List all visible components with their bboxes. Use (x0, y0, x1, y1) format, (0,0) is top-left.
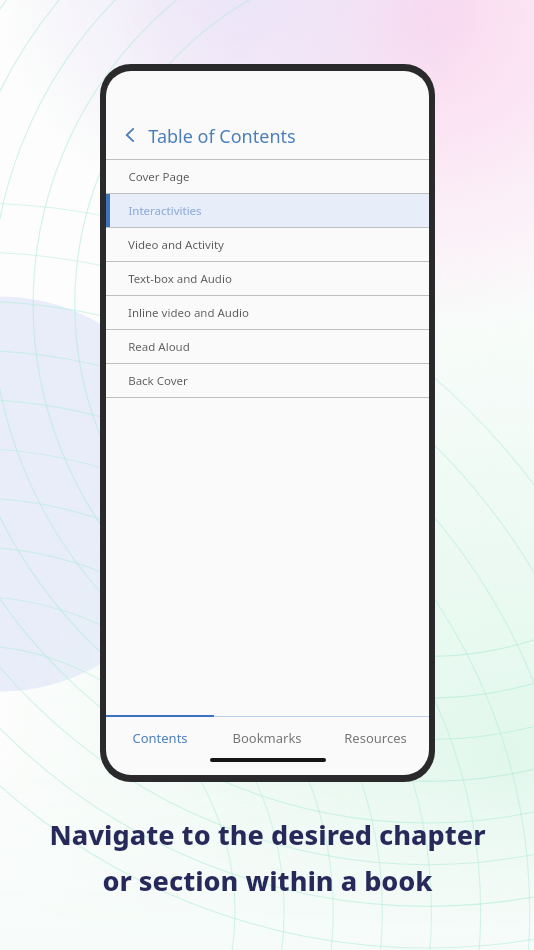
button[interactable]: Cover Page (106, 160, 429, 193)
staticText: Back Cover (128, 373, 188, 389)
button[interactable]: Video and Activity (106, 228, 429, 261)
button[interactable]: Contents (106, 719, 213, 757)
staticText: Interactivities (128, 203, 202, 219)
staticText: Bookmarks (232, 729, 302, 747)
staticText: Read Aloud (128, 339, 190, 355)
staticText: Video and Activity (128, 237, 224, 253)
staticText: Navigate to the desired chapter (49, 816, 486, 853)
button[interactable]: Interactivities (106, 194, 429, 227)
staticText: or section within a book (102, 862, 433, 899)
staticText: Cover Page (128, 169, 190, 185)
staticText: Text-box and Audio (128, 271, 232, 287)
button[interactable]: Resources (321, 719, 429, 757)
staticText: Resources (344, 729, 407, 747)
button[interactable]: Bookmarks (213, 719, 321, 757)
button[interactable]: Back Cover (106, 364, 429, 397)
button[interactable]: Read Aloud (106, 330, 429, 363)
staticText: Contents (132, 729, 188, 747)
button[interactable]: Back (117, 122, 143, 148)
button[interactable]: Back (106, 71, 429, 159)
button[interactable]: Text-box and Audio (106, 262, 429, 295)
staticText: Table of Contents (148, 124, 296, 149)
staticText: Inline video and Audio (128, 305, 249, 321)
button[interactable]: Inline video and Audio (106, 296, 429, 329)
